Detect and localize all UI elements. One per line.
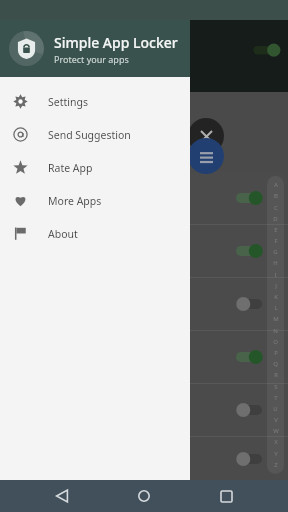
button[interactable]: Master toggle	[250, 40, 284, 60]
staticText: Z	[274, 461, 278, 469]
button[interactable]: Lock enabled	[236, 190, 262, 206]
button[interactable]: Send Suggestion	[0, 118, 190, 151]
button[interactable]: Lock disabled	[236, 402, 262, 418]
staticText: W	[273, 427, 279, 435]
staticText: O	[273, 338, 278, 346]
button[interactable]: Recents	[206, 480, 246, 512]
button[interactable]: Rate App	[0, 151, 190, 184]
staticText: B	[274, 192, 278, 200]
button[interactable]: Lock disabled	[0, 278, 288, 330]
button[interactable]: Back	[42, 480, 82, 512]
staticText: K	[274, 293, 278, 301]
button[interactable]: Lock disabled	[236, 451, 262, 467]
button[interactable]: Close	[188, 118, 224, 154]
staticText: Protect your apps	[54, 53, 129, 65]
staticText: Send Suggestion	[48, 128, 131, 142]
staticText: H	[273, 259, 278, 267]
button[interactable]: Lock enabled	[0, 225, 288, 277]
staticText: P	[274, 349, 278, 357]
staticText: Settings	[48, 95, 88, 109]
button[interactable]: Lock enabled	[236, 349, 262, 365]
staticText: X	[274, 438, 278, 446]
button[interactable]: Settings	[0, 85, 190, 118]
button[interactable]: Home	[124, 480, 164, 512]
staticText: J	[275, 282, 277, 290]
staticText: Rate App	[48, 161, 93, 175]
staticText: D	[273, 215, 278, 223]
staticText: I	[274, 271, 277, 279]
staticText: E	[274, 226, 278, 234]
staticText: Simple App Locker	[54, 33, 178, 52]
button[interactable]: Lock enabled	[0, 331, 288, 383]
staticText: L	[274, 304, 278, 312]
button[interactable]: Lock disabled	[236, 296, 262, 312]
staticText: V	[274, 416, 278, 424]
button[interactable]: Lock disabled	[0, 437, 288, 480]
staticText: M	[273, 315, 279, 323]
button[interactable]: More Apps	[0, 184, 190, 217]
button[interactable]: About	[0, 217, 190, 250]
staticText: Y	[274, 450, 278, 458]
staticText: About	[48, 227, 78, 241]
staticText: N	[273, 327, 278, 335]
button[interactable]: Lock disabled	[0, 384, 288, 436]
staticText: S	[274, 383, 278, 391]
staticText: A	[274, 181, 278, 189]
staticText: U	[273, 405, 278, 413]
button[interactable]: Alphabet index	[267, 176, 284, 474]
staticText: R	[274, 371, 278, 379]
staticText: Q	[273, 360, 278, 368]
staticText: C	[274, 204, 278, 212]
button[interactable]: Lock enabled	[236, 243, 262, 259]
staticText: F	[274, 237, 278, 245]
button[interactable]: Lock enabled	[0, 172, 288, 224]
staticText: More Apps	[48, 194, 102, 208]
button[interactable]: Menu	[188, 138, 224, 174]
staticText: G	[273, 248, 278, 256]
staticText: T	[274, 394, 278, 402]
